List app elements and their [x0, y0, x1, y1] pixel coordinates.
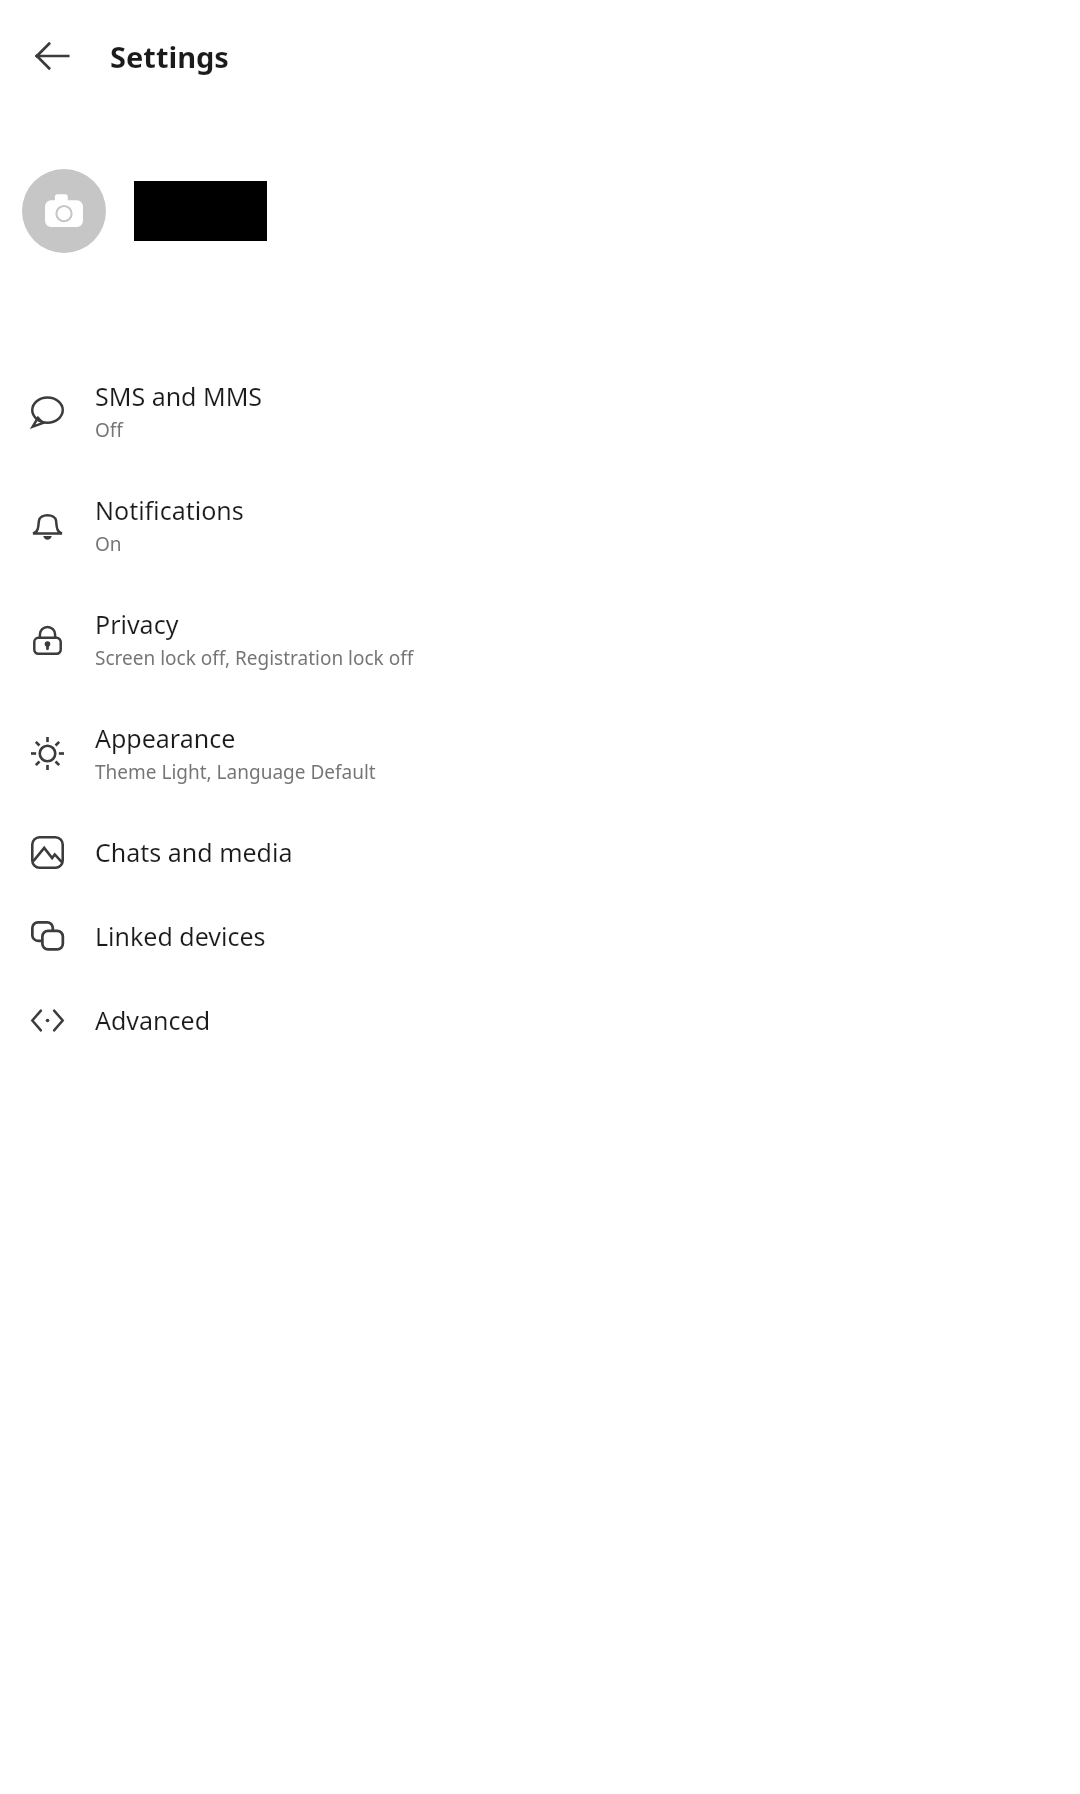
staticText: Settings — [110, 37, 229, 76]
staticText: SMS and MMS — [95, 379, 263, 413]
button[interactable]: Advanced — [0, 978, 1080, 1062]
button[interactable]: Notifications — [0, 468, 1080, 582]
staticText: Off — [95, 417, 123, 443]
staticText: Chats and media — [95, 835, 293, 869]
button[interactable] — [0, 112, 1080, 310]
button[interactable]: SMS and MMS — [0, 354, 1080, 468]
staticText: Theme Light, Language Default — [95, 759, 376, 785]
staticText: Appearance — [95, 721, 236, 755]
button[interactable]: Chats and media — [0, 810, 1080, 894]
button[interactable]: Appearance — [0, 696, 1080, 810]
button[interactable]: Linked devices — [0, 894, 1080, 978]
button[interactable]: Privacy — [0, 582, 1080, 696]
staticText: Advanced — [95, 1003, 211, 1037]
staticText: On — [95, 531, 122, 557]
staticText: Screen lock off, Registration lock off — [95, 645, 414, 671]
staticText: Notifications — [95, 493, 244, 527]
staticText: Linked devices — [95, 919, 266, 953]
staticText: Privacy — [95, 607, 179, 641]
button[interactable]: Back — [20, 24, 84, 88]
